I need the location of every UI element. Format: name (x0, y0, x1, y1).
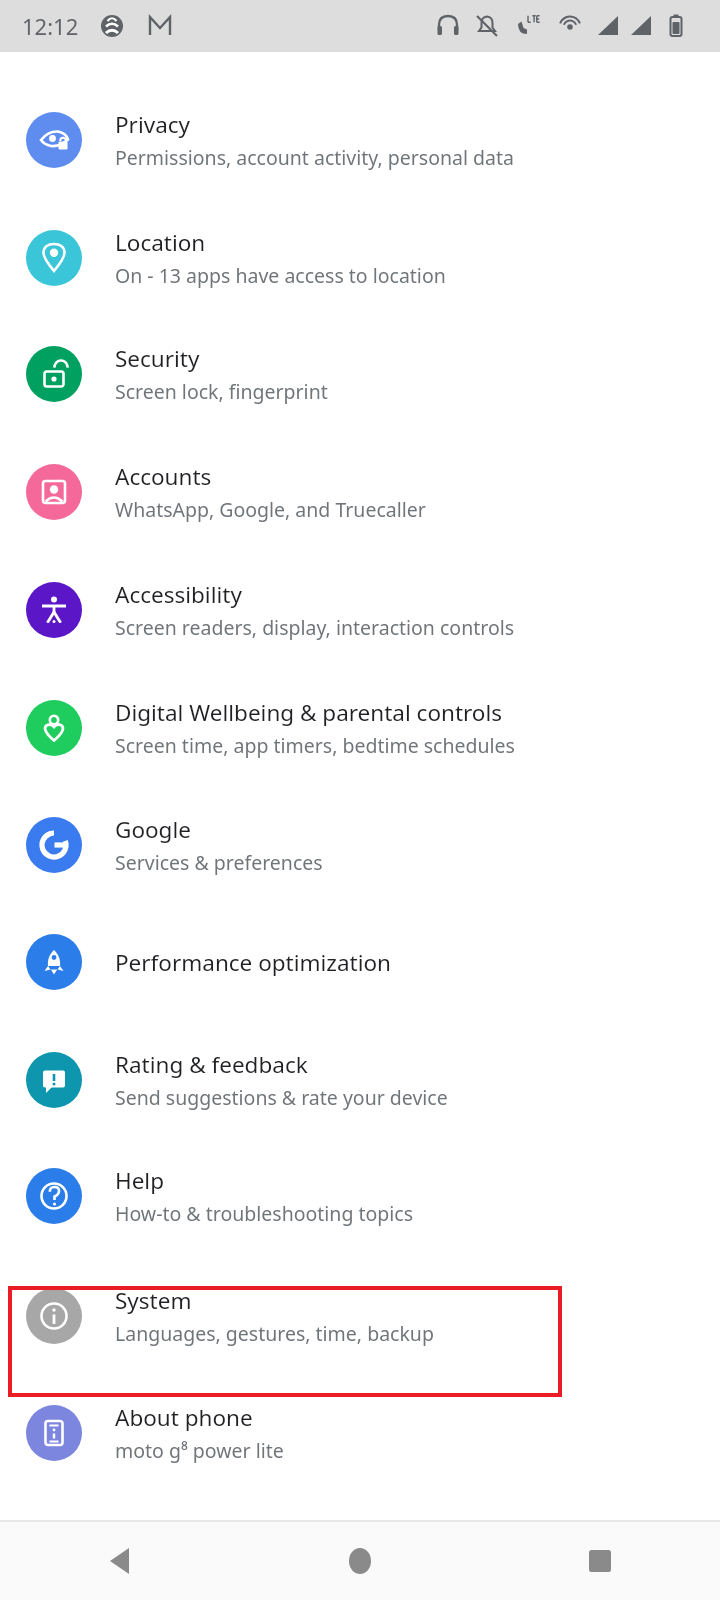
staticText: Location (115, 227, 206, 258)
button[interactable]: Help (0, 1146, 720, 1246)
button[interactable]: About phone (0, 1383, 720, 1483)
staticText: WhatsApp, Google, and Truecaller (115, 496, 426, 523)
staticText: Performance optimization (115, 947, 392, 978)
button[interactable]: Recent apps (480, 1522, 720, 1600)
button[interactable]: Digital Wellbeing & parental controls (0, 678, 720, 778)
staticText: Screen time, app timers, bedtime schedul… (115, 732, 515, 759)
staticText: Google (115, 814, 191, 845)
staticText: Accounts (115, 461, 212, 492)
button[interactable]: Google (0, 795, 720, 895)
staticText: Accessibility (115, 579, 242, 610)
staticText: On - 13 apps have access to location (115, 262, 446, 289)
staticText: How-to & troubleshooting topics (115, 1200, 414, 1227)
button[interactable]: System (0, 1266, 720, 1366)
button[interactable]: Home (240, 1522, 480, 1600)
staticText: Screen readers, display, interaction con… (115, 614, 515, 641)
button[interactable]: Performance optimization (0, 912, 720, 1012)
button[interactable]: Location (0, 208, 720, 308)
staticText: Help (115, 1165, 165, 1196)
staticText: Privacy (115, 109, 191, 140)
staticText: Rating & feedback (115, 1049, 308, 1080)
button[interactable]: Privacy (0, 90, 720, 190)
button[interactable]: Accessibility (0, 560, 720, 660)
staticText: Send suggestions & rate your device (115, 1084, 448, 1111)
staticText: 12:12 (22, 11, 79, 41)
button[interactable]: Accounts (0, 442, 720, 542)
staticText: Languages, gestures, time, backup (115, 1320, 434, 1347)
button[interactable]: Security (0, 324, 720, 424)
staticText: Security (115, 343, 200, 374)
staticText: System (115, 1285, 192, 1316)
staticText: Services & preferences (115, 849, 323, 876)
staticText: About phone (115, 1402, 253, 1433)
staticText: moto g⁸ power lite (115, 1437, 284, 1464)
staticText: Digital Wellbeing & parental controls (115, 697, 503, 728)
staticText: Screen lock, fingerprint (115, 378, 328, 405)
button[interactable]: Back (0, 1522, 240, 1600)
button[interactable]: Rating & feedback (0, 1030, 720, 1130)
staticText: Permissions, account activity, personal … (115, 144, 514, 171)
